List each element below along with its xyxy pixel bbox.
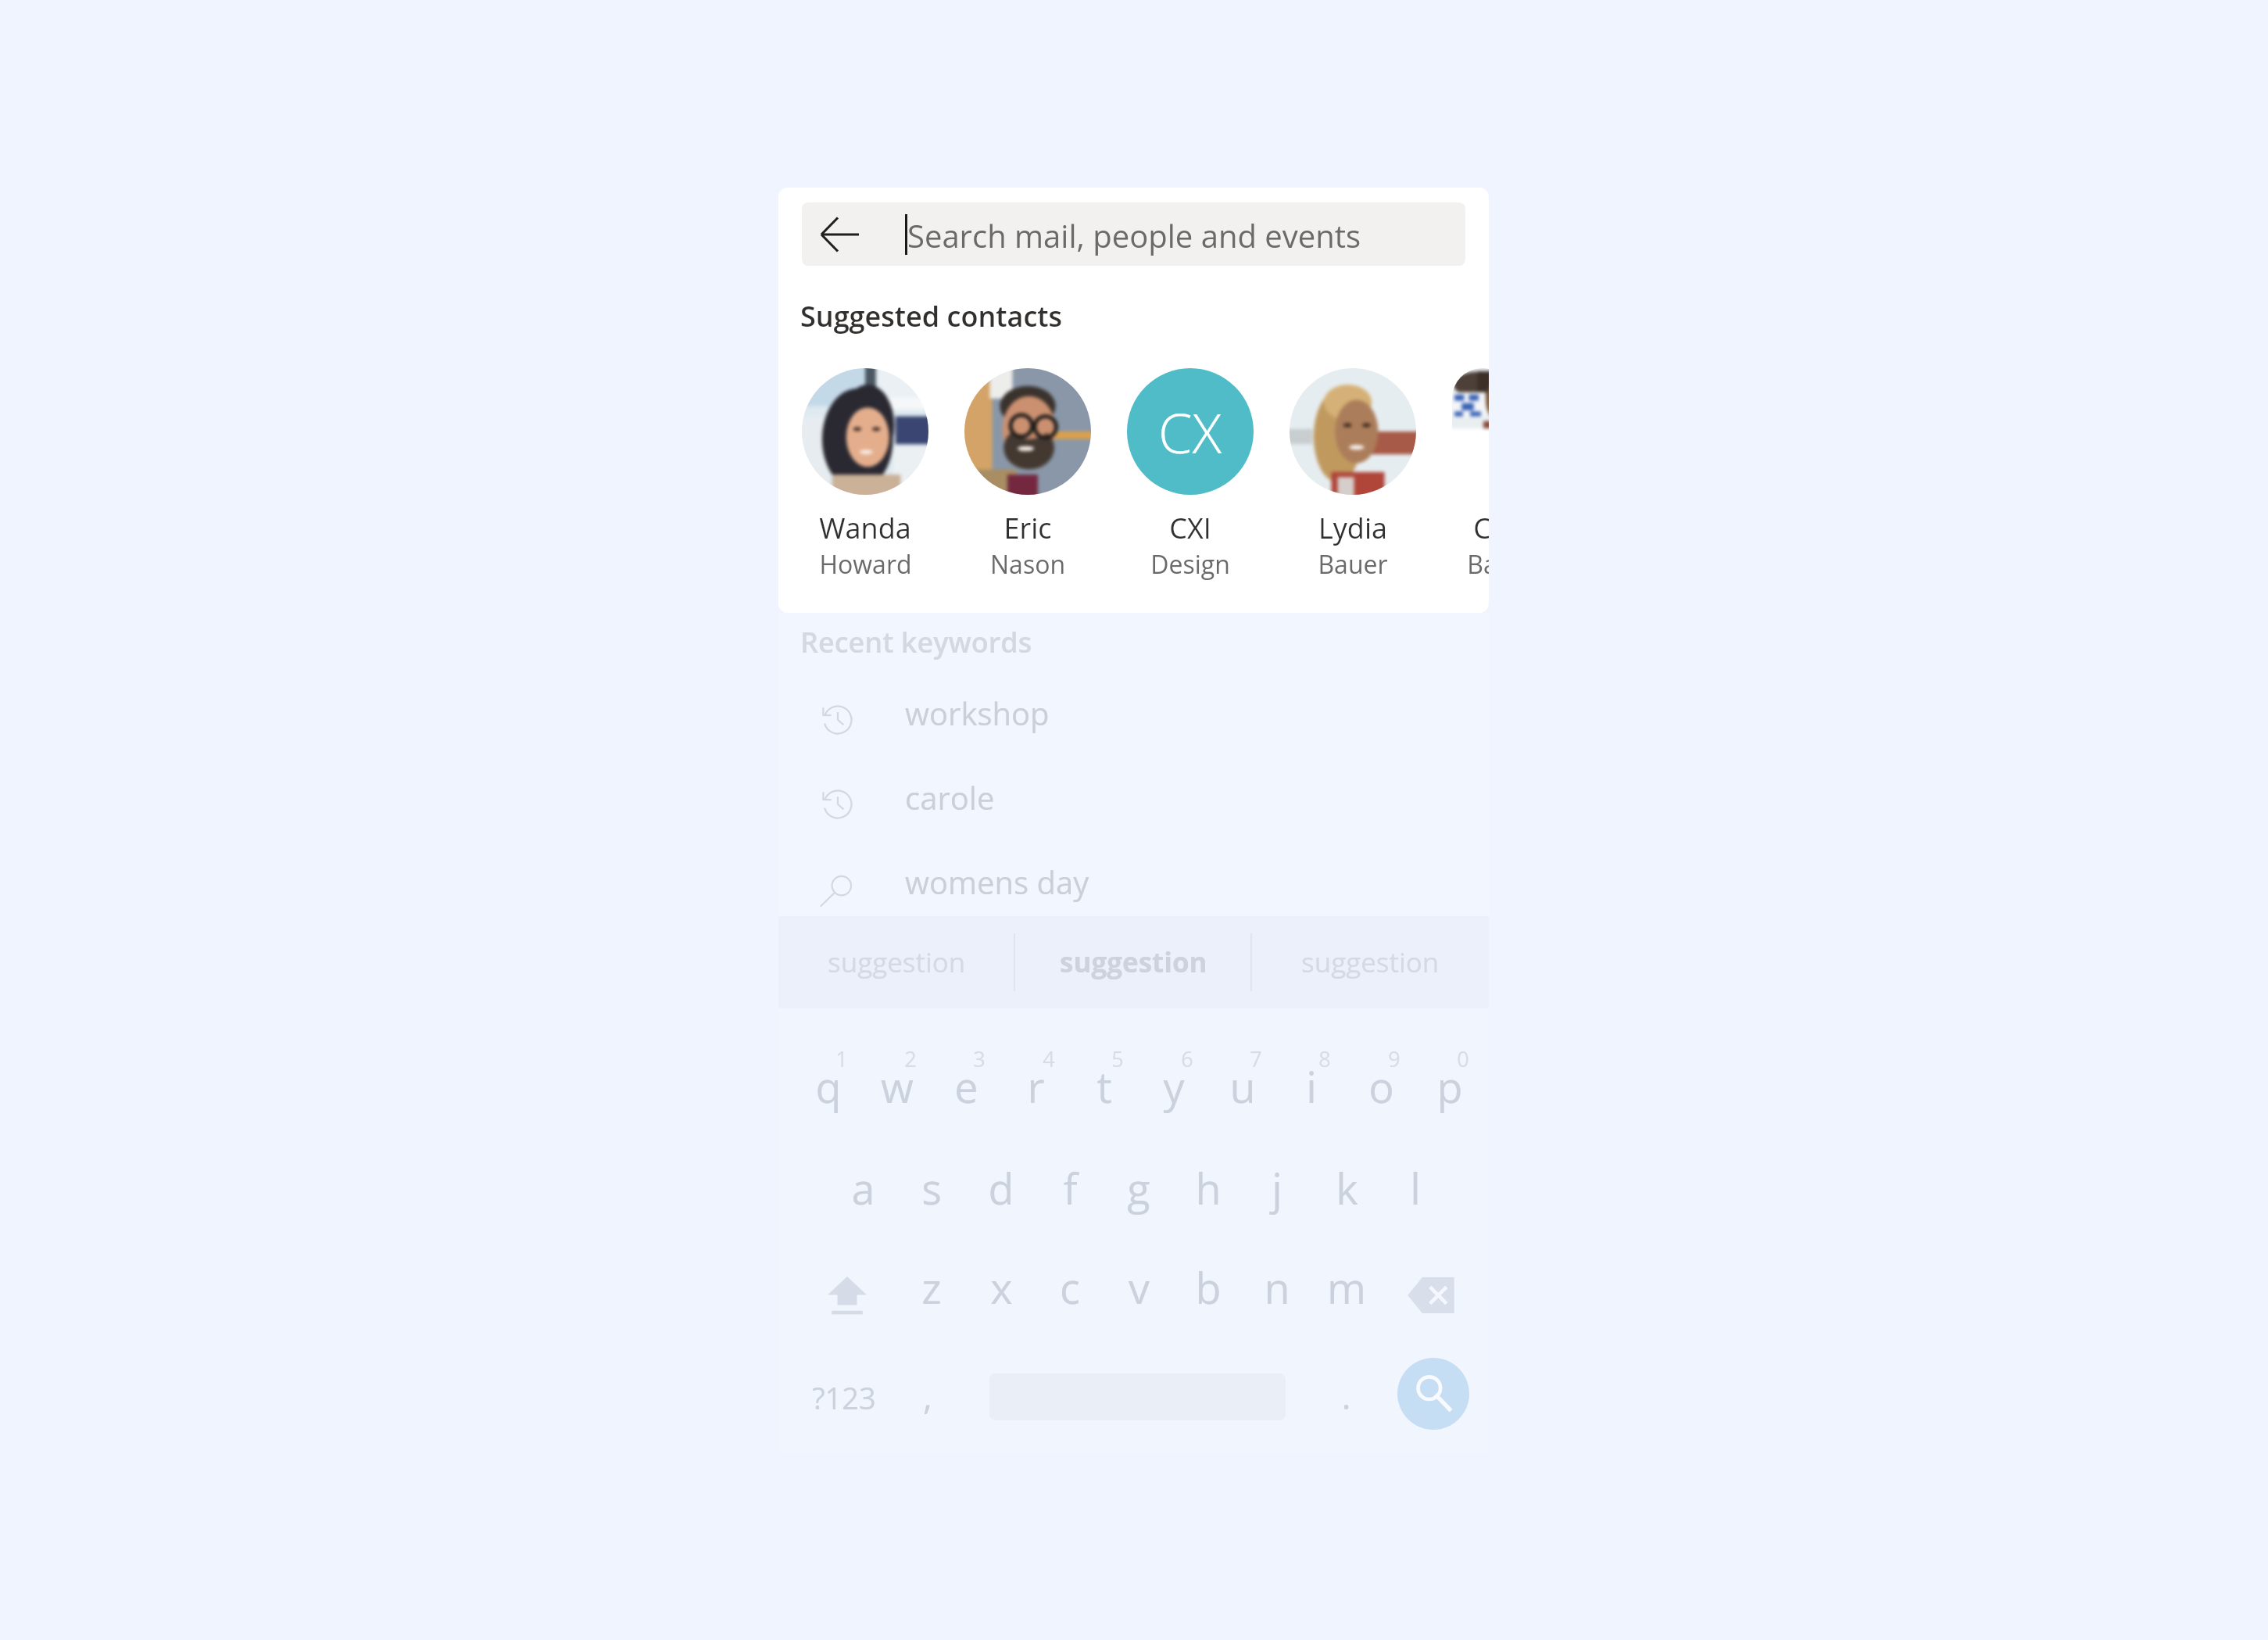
staticText: u: [1229, 1058, 1256, 1115]
staticText: r: [1027, 1058, 1045, 1115]
staticText: workshop: [905, 692, 1050, 734]
staticText: v: [1129, 1259, 1150, 1316]
button[interactable]: 9: [1360, 1044, 1429, 1076]
button[interactable]: 4: [1014, 1044, 1083, 1076]
button[interactable]: d: [967, 1159, 1036, 1223]
staticText: Search mail, people and events: [907, 214, 1361, 256]
button[interactable]: i: [1277, 1058, 1346, 1121]
staticText: Ba: [1467, 547, 1489, 582]
staticText: 7: [1250, 1044, 1262, 1073]
staticText: womens day: [905, 861, 1089, 903]
button[interactable]: w: [863, 1058, 932, 1121]
button[interactable]: 8: [1290, 1044, 1359, 1076]
staticText: w: [881, 1058, 914, 1115]
staticText: CXI: [1169, 509, 1211, 547]
staticText: o: [1368, 1058, 1394, 1115]
button[interactable]: 0: [1429, 1044, 1497, 1076]
button[interactable]: 7: [1222, 1044, 1290, 1076]
staticText: s: [921, 1159, 942, 1217]
staticText: d: [988, 1159, 1014, 1217]
button[interactable]: ?123: [782, 1377, 907, 1422]
button[interactable]: j: [1243, 1159, 1311, 1223]
button[interactable]: Wanda: [802, 368, 928, 582]
staticText: 3: [973, 1044, 986, 1073]
staticText: 1: [835, 1044, 848, 1073]
button[interactable]: c: [1036, 1259, 1104, 1322]
button[interactable]: Eric: [964, 368, 1091, 582]
button[interactable]: q: [794, 1058, 863, 1121]
staticText: q: [815, 1058, 842, 1115]
button[interactable]: 6: [1153, 1044, 1222, 1076]
button[interactable]: l: [1381, 1159, 1450, 1223]
button[interactable]: b: [1174, 1259, 1243, 1322]
button[interactable]: workshop: [778, 677, 1489, 761]
staticText: C: [1473, 509, 1489, 547]
button[interactable]: v: [1104, 1259, 1173, 1322]
button[interactable]: suggestion: [778, 916, 1015, 1008]
button[interactable]: carole: [778, 761, 1489, 846]
staticText: Bauer: [1318, 547, 1388, 582]
button[interactable]: suggestion: [1252, 916, 1489, 1008]
staticText: suggestion: [1060, 944, 1207, 981]
staticText: ,: [923, 1371, 932, 1420]
button[interactable]: Search: [1397, 1358, 1469, 1430]
staticText: t: [1096, 1058, 1112, 1115]
staticText: x: [990, 1259, 1013, 1316]
button[interactable]: g: [1104, 1159, 1173, 1223]
staticText: e: [954, 1058, 978, 1115]
button[interactable]: Back: [816, 211, 863, 258]
staticText: h: [1195, 1159, 1222, 1217]
staticText: b: [1195, 1259, 1222, 1316]
button[interactable]: 1: [807, 1044, 876, 1076]
staticText: f: [1063, 1159, 1078, 1217]
staticText: k: [1336, 1159, 1358, 1217]
staticText: .: [1341, 1371, 1351, 1420]
button[interactable]: o: [1347, 1058, 1415, 1121]
staticText: Eric: [1003, 509, 1052, 547]
button[interactable]: womens day: [778, 846, 1489, 930]
button[interactable]: r: [1001, 1058, 1070, 1121]
button[interactable]: u: [1208, 1058, 1277, 1121]
staticText: y: [1163, 1058, 1185, 1115]
staticText: suggestion: [1301, 944, 1440, 981]
button[interactable]: y: [1139, 1058, 1208, 1121]
button[interactable]: CX: [1127, 368, 1254, 582]
button[interactable]: f: [1036, 1159, 1104, 1223]
button[interactable]: ,: [893, 1371, 962, 1425]
staticText: j: [1272, 1159, 1282, 1217]
button[interactable]: t: [1070, 1058, 1139, 1121]
button[interactable]: Lydia: [1290, 368, 1416, 582]
button[interactable]: x: [967, 1259, 1036, 1322]
staticText: suggestion: [828, 944, 966, 981]
staticText: 5: [1111, 1044, 1124, 1073]
staticText: Recent keywords: [800, 623, 1032, 661]
button[interactable]: Backspace: [1403, 1267, 1459, 1323]
button[interactable]: z: [897, 1259, 966, 1322]
button[interactable]: s: [897, 1159, 966, 1223]
staticText: 6: [1181, 1044, 1193, 1073]
button[interactable]: a: [828, 1159, 897, 1223]
staticText: Nason: [990, 547, 1065, 582]
button[interactable]: p: [1415, 1058, 1484, 1121]
button[interactable]: suggestion: [1015, 916, 1252, 1008]
button[interactable]: Shift: [822, 1270, 872, 1320]
button[interactable]: 5: [1083, 1044, 1152, 1076]
staticText: g: [1127, 1159, 1150, 1217]
staticText: i: [1306, 1058, 1317, 1115]
staticText: Howard: [819, 547, 912, 582]
button[interactable]: n: [1243, 1259, 1311, 1322]
staticText: p: [1436, 1058, 1463, 1115]
button[interactable]: k: [1312, 1159, 1381, 1223]
button[interactable]: 2: [876, 1044, 945, 1076]
staticText: Wanda: [819, 509, 911, 547]
button[interactable]: e: [932, 1058, 1000, 1121]
button[interactable]: 3: [945, 1044, 1014, 1076]
button[interactable]: C: [1452, 368, 1489, 582]
staticText: Design: [1150, 547, 1230, 582]
staticText: Suggested contacts: [800, 297, 1063, 335]
button[interactable]: m: [1312, 1259, 1381, 1322]
button[interactable]: Back: [802, 202, 1465, 266]
button[interactable]: h: [1174, 1159, 1243, 1223]
